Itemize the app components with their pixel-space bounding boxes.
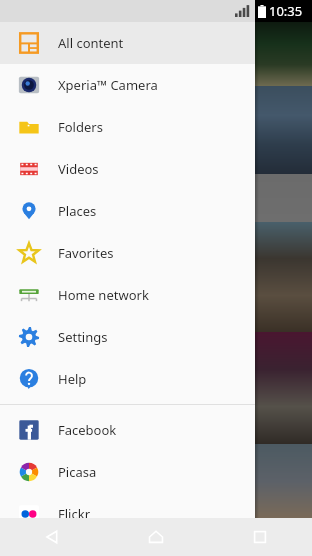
button[interactable]: Help	[0, 358, 255, 400]
button[interactable]: Facebook	[0, 409, 255, 451]
button[interactable]: Places	[0, 190, 255, 232]
button[interactable]: All content	[0, 22, 255, 64]
button[interactable]: Folders	[0, 106, 255, 148]
staticText: Picasa	[58, 463, 97, 481]
button[interactable]	[255, 174, 312, 222]
button[interactable]	[255, 444, 312, 556]
button[interactable]	[255, 0, 312, 86]
button[interactable]: Videos	[0, 148, 255, 190]
button[interactable]	[255, 332, 312, 444]
button[interactable]: Settings	[0, 316, 255, 358]
staticText: Settings	[58, 328, 108, 346]
staticText: 10:35	[269, 2, 303, 20]
staticText: Help	[58, 370, 87, 388]
staticText: Folders	[58, 118, 103, 136]
button[interactable]: Home network	[0, 274, 255, 316]
staticText: Flickr	[58, 505, 91, 523]
button[interactable]: Xperia™ Camera	[0, 64, 255, 106]
staticText: Home network	[58, 286, 149, 304]
staticText: All content	[58, 34, 124, 52]
button[interactable]	[255, 222, 312, 332]
button[interactable]: Flickr	[0, 493, 255, 535]
button[interactable]	[255, 86, 312, 174]
staticText: Places	[58, 202, 97, 220]
staticText: Favorites	[58, 244, 114, 262]
staticText: Xperia™ Camera	[58, 76, 158, 94]
button[interactable]: Favorites	[0, 232, 255, 274]
staticText: Facebook	[58, 421, 117, 439]
staticText: Videos	[58, 160, 99, 178]
button[interactable]: Picasa	[0, 451, 255, 493]
